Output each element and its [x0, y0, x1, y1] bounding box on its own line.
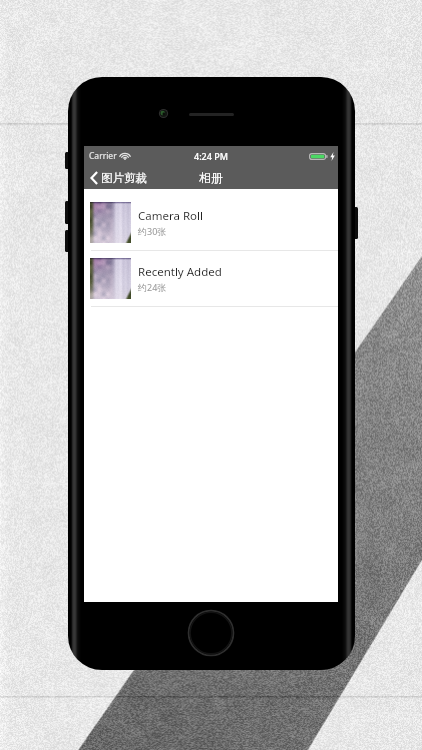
button[interactable]: Recently Added: [84, 251, 338, 307]
staticText: Carrier: [89, 150, 117, 162]
staticText: Recently Added: [138, 264, 222, 280]
staticText: 4:24 PM: [194, 150, 228, 162]
staticText: Camera Roll: [138, 208, 203, 224]
button[interactable]: Camera Roll: [84, 189, 338, 251]
staticText: 相册: [199, 170, 223, 185]
button[interactable]: Back: [84, 168, 153, 188]
staticText: 约30张: [138, 225, 167, 237]
staticText: 约24张: [138, 281, 167, 293]
staticText: 图片剪裁: [101, 171, 147, 185]
other: Back: [90, 171, 98, 185]
